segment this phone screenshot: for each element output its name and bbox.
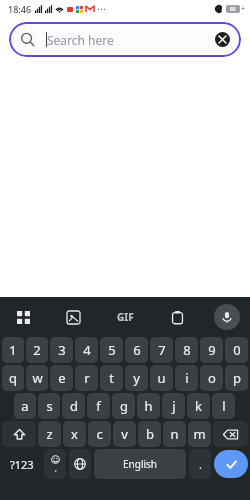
staticText: 4 [83,341,91,359]
staticText: t [109,369,114,387]
staticText: 9 [208,341,216,359]
staticText: u [157,369,166,387]
button[interactable]: u [150,365,173,391]
staticText: d [70,397,78,415]
staticText: x [71,425,78,443]
staticText: k [195,397,202,415]
staticText: English [123,457,158,471]
staticText: Search here [47,32,114,48]
button[interactable]: x [63,421,86,447]
staticText: , [55,464,57,474]
staticText: z [46,425,53,443]
button[interactable]: i [175,365,198,391]
staticText: 5 [108,341,116,359]
button[interactable]: Voice input [214,304,240,330]
button[interactable]: o [200,365,223,391]
button[interactable]: g [112,393,135,419]
button[interactable]: 7 [150,337,173,363]
button[interactable]: p [225,365,248,391]
button[interactable]: Clipboard [164,304,190,330]
button[interactable]: h [137,393,160,419]
staticText: b [146,425,154,443]
staticText: q [9,369,17,387]
staticText: f [96,397,101,415]
button[interactable]: . [189,449,211,479]
button[interactable]: z [38,421,61,447]
button[interactable]: r [75,365,98,391]
button[interactable]: j [162,393,185,419]
button[interactable]: t [100,365,123,391]
button[interactable]: n [163,421,186,447]
staticText: c [96,425,103,443]
staticText: l [222,397,226,415]
staticText: y [133,369,140,387]
button[interactable]: 3 [50,337,73,363]
button[interactable]: s [38,393,60,419]
staticText: 86 [230,6,236,13]
button[interactable]: 8 [175,337,198,363]
staticText: s [46,397,53,415]
staticText: 6 [133,341,141,359]
staticText: 8 [183,341,191,359]
button[interactable]: w [26,365,48,391]
button[interactable]: q [2,365,24,391]
button[interactable]: c [88,421,111,447]
button[interactable]: 0 [225,337,248,363]
button[interactable]: Shift [2,421,36,447]
staticText: n [170,425,179,443]
button[interactable]: m [188,421,211,447]
staticText: ⋯ [97,4,106,14]
staticText: 0 [233,341,241,359]
button[interactable]: l [212,393,235,419]
button[interactable]: Emoji [44,449,66,479]
staticText: m [193,425,206,443]
button[interactable]: 1 [2,337,24,363]
button[interactable]: ?123 [2,449,41,479]
staticText: 2 [33,341,41,359]
staticText: h [144,397,153,415]
button[interactable]: Backspace [213,421,248,447]
button[interactable]: v [113,421,136,447]
button[interactable]: k [187,393,210,419]
staticText: GIF [117,310,134,324]
button[interactable]: y [125,365,148,391]
button[interactable]: b [138,421,161,447]
staticText: 1 [9,341,17,359]
button[interactable]: GIF [110,304,140,330]
button[interactable]: a [14,393,36,419]
staticText: 7 [158,341,166,359]
staticText: ?123 [10,457,34,472]
button[interactable]: Change language [69,449,91,479]
staticText: v [121,425,128,443]
staticText: g [120,397,128,415]
button[interactable]: Clear search [215,32,230,47]
button[interactable]: Enter [214,450,248,478]
staticText: r [84,369,90,387]
button[interactable]: f [87,393,110,419]
staticText: + [241,4,246,14]
staticText: . [199,457,202,472]
staticText: j [172,397,176,415]
staticText: i [185,369,189,387]
button[interactable]: 6 [125,337,148,363]
button[interactable]: English [94,449,186,479]
button[interactable]: Stickers [60,304,86,330]
staticText: 18:46 [8,3,32,15]
button[interactable]: 9 [200,337,223,363]
button[interactable]: 2 [26,337,48,363]
button[interactable]: Apps [10,304,36,330]
button[interactable]: Search here [9,22,241,57]
staticText: e [58,369,66,387]
button[interactable]: 4 [75,337,98,363]
staticText: w [32,369,43,387]
button[interactable]: e [50,365,73,391]
button[interactable]: d [62,393,85,419]
staticText: p [233,369,241,387]
button[interactable]: 5 [100,337,123,363]
staticText: o [208,369,216,387]
staticText: a [21,397,29,415]
staticText: 3 [58,341,66,359]
